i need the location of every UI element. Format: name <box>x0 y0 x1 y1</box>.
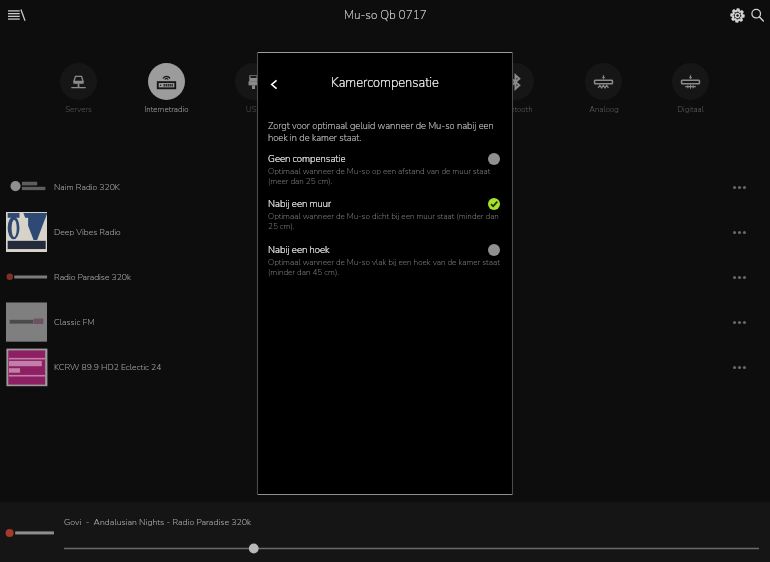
staticText: Naim Radio 320K <box>54 181 120 193</box>
button[interactable]: Nabij een muur <box>257 197 513 241</box>
button[interactable]: Internetradio <box>123 63 210 115</box>
button[interactable]: Bluetooth <box>472 63 559 115</box>
staticText: Radio Paradise 320k <box>54 271 132 283</box>
button[interactable]: More options <box>724 217 754 247</box>
staticText: Geen compensatie <box>268 152 346 165</box>
staticText: Mu-so Qb 0717 <box>344 7 427 23</box>
button[interactable]: Digitaal <box>647 63 734 115</box>
button[interactable]: USB <box>210 63 297 115</box>
staticText: USB <box>246 104 262 115</box>
staticText: Optimaal wanneer de Mu-so op een afstand… <box>268 166 504 187</box>
button[interactable]: More options <box>724 172 754 202</box>
staticText: Kamercompensatie <box>331 74 439 92</box>
button[interactable]: More options <box>724 262 754 292</box>
staticText: Internetradio <box>144 104 189 115</box>
staticText: KCRW 89.9 HD2 Eclectic 24 <box>54 361 162 373</box>
staticText: Optimaal wanneer de Mu-so vlak bij een h… <box>268 257 504 278</box>
button[interactable]: Radio Paradise 320k <box>0 254 770 299</box>
button[interactable]: AirPlay <box>385 63 472 115</box>
button[interactable]: Back <box>259 68 285 94</box>
staticText: Deep Vibes Radio <box>54 226 121 238</box>
button[interactable]: Search <box>747 5 767 25</box>
staticText: Optimaal wanneer de Mu-so dicht bij een … <box>268 211 504 232</box>
button[interactable]: Analoog <box>560 63 647 115</box>
button[interactable]: Deep Vibes Radio <box>0 209 770 254</box>
button[interactable]: More options <box>724 307 754 337</box>
staticText: Govi - Andalusian Nights - Radio Paradis… <box>64 516 252 528</box>
button[interactable]: KCRW 89.9 HD2 Eclectic 24 <box>0 344 770 389</box>
button[interactable]: More options <box>724 352 754 382</box>
staticText: Zorgt voor optimaal geluid wanneer de Mu… <box>268 119 496 144</box>
button[interactable]: Servers <box>35 63 122 115</box>
button[interactable]: Nabij een hoek <box>257 243 513 287</box>
staticText: Nabij een muur <box>268 197 332 210</box>
staticText: Analoog <box>589 104 619 115</box>
staticText: Digitaal <box>677 104 704 115</box>
staticText: Classic FM <box>54 316 95 328</box>
staticText: Bluetooth <box>498 104 533 115</box>
staticText: Servers <box>65 104 92 115</box>
button[interactable]: Geen compensatie <box>257 152 513 196</box>
staticText: Nabij een hoek <box>268 243 330 256</box>
button[interactable]: Classic FM <box>0 299 770 344</box>
button[interactable]: Naim Radio 320K <box>0 164 770 209</box>
button[interactable]: Playlist <box>3 2 29 28</box>
button[interactable]: iPod <box>298 63 385 115</box>
button[interactable]: Settings <box>727 5 747 25</box>
